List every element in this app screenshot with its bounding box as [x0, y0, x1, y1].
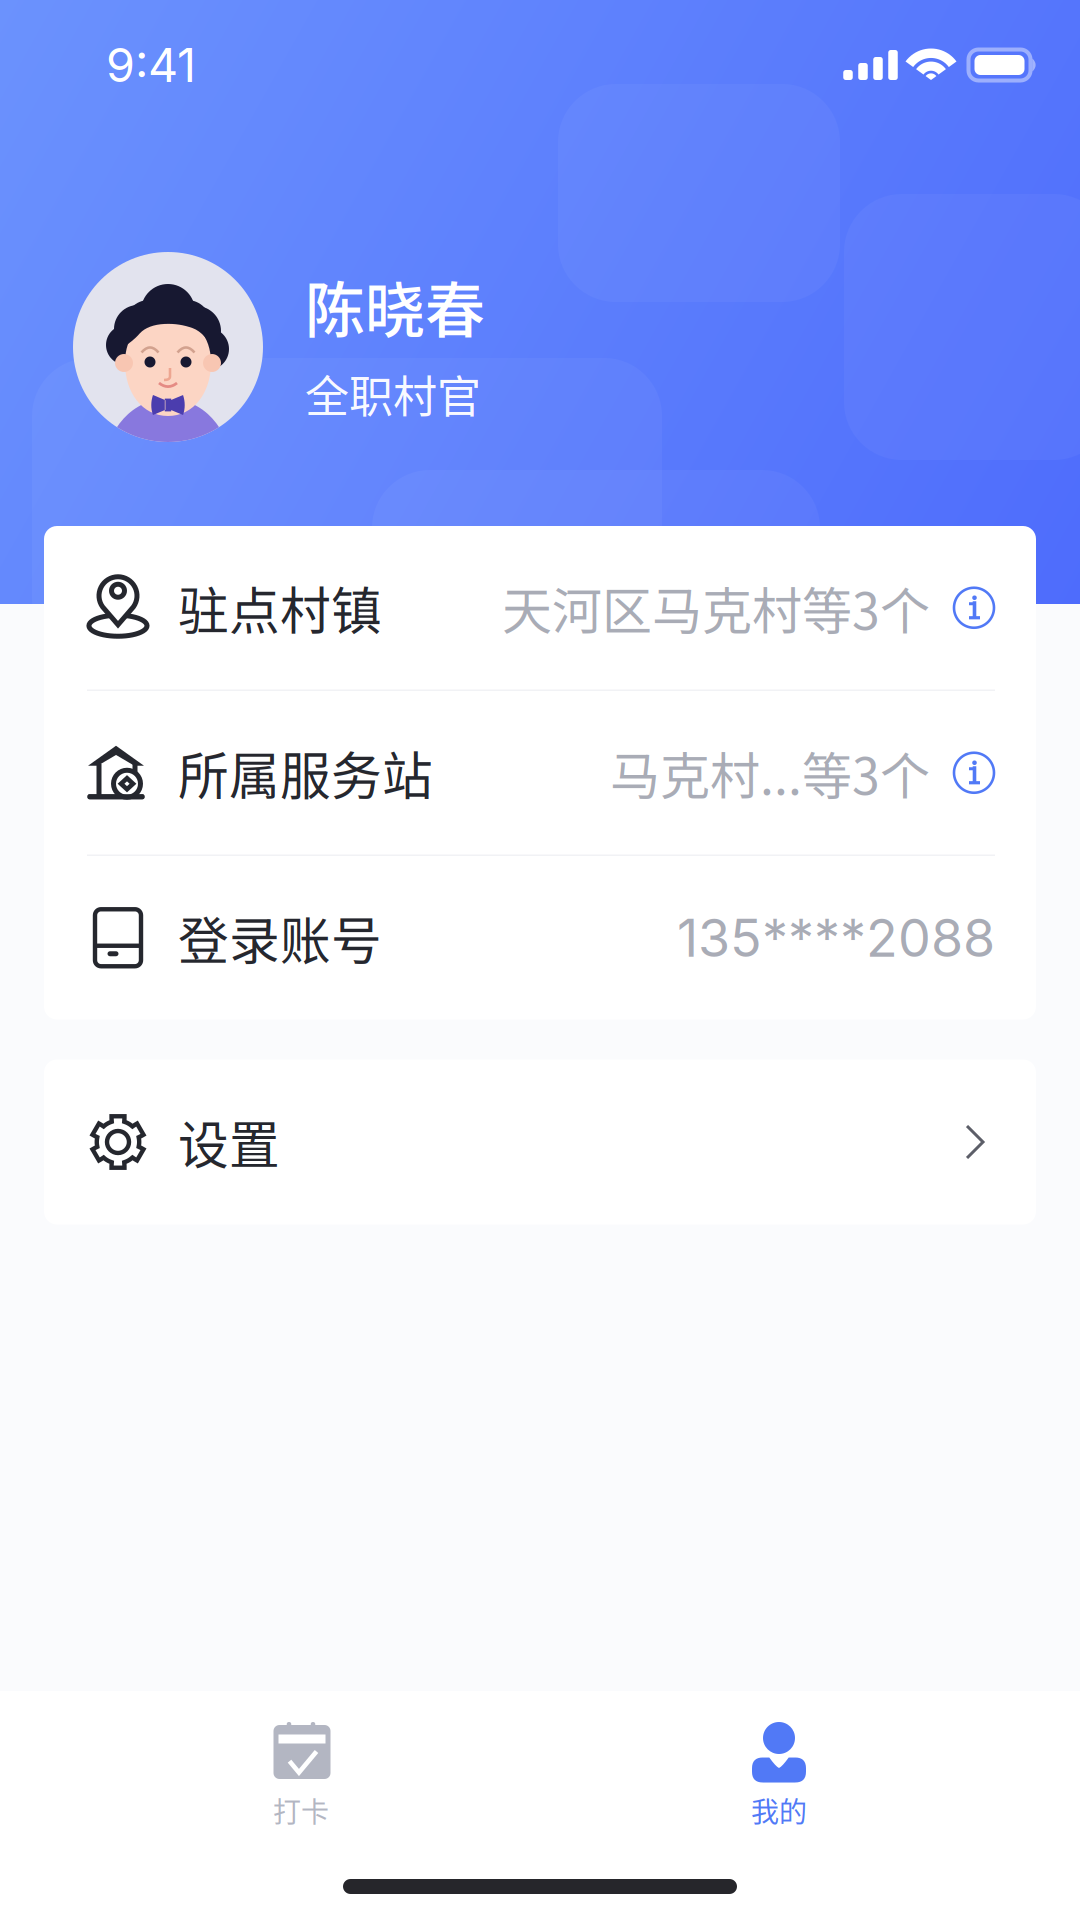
staticText: 登录账号 — [178, 901, 382, 974]
button[interactable]: 设置 — [44, 1059, 1036, 1224]
button[interactable]: 所属服务站 — [44, 691, 1036, 854]
staticText: 打卡 — [273, 1790, 329, 1830]
staticText: 马克村...等3个 — [610, 736, 930, 809]
staticText: 全职村官 — [305, 362, 481, 426]
staticText: 135****2088 — [677, 906, 995, 969]
button[interactable]: 我的 — [669, 1720, 889, 1848]
staticText: 设置 — [178, 1105, 280, 1179]
staticText: 9:41 — [106, 37, 196, 93]
staticText: 陈晓春 — [305, 263, 485, 350]
staticText: 我的 — [751, 1790, 807, 1830]
button[interactable]: 驻点村镇 — [44, 526, 1036, 689]
staticText: 驻点村镇 — [178, 571, 382, 644]
staticText: 天河区马克村等3个 — [502, 571, 930, 644]
button[interactable]: 登录账号 — [44, 856, 1036, 1019]
button[interactable]: 打卡 — [191, 1720, 411, 1848]
staticText: 所属服务站 — [178, 736, 433, 809]
